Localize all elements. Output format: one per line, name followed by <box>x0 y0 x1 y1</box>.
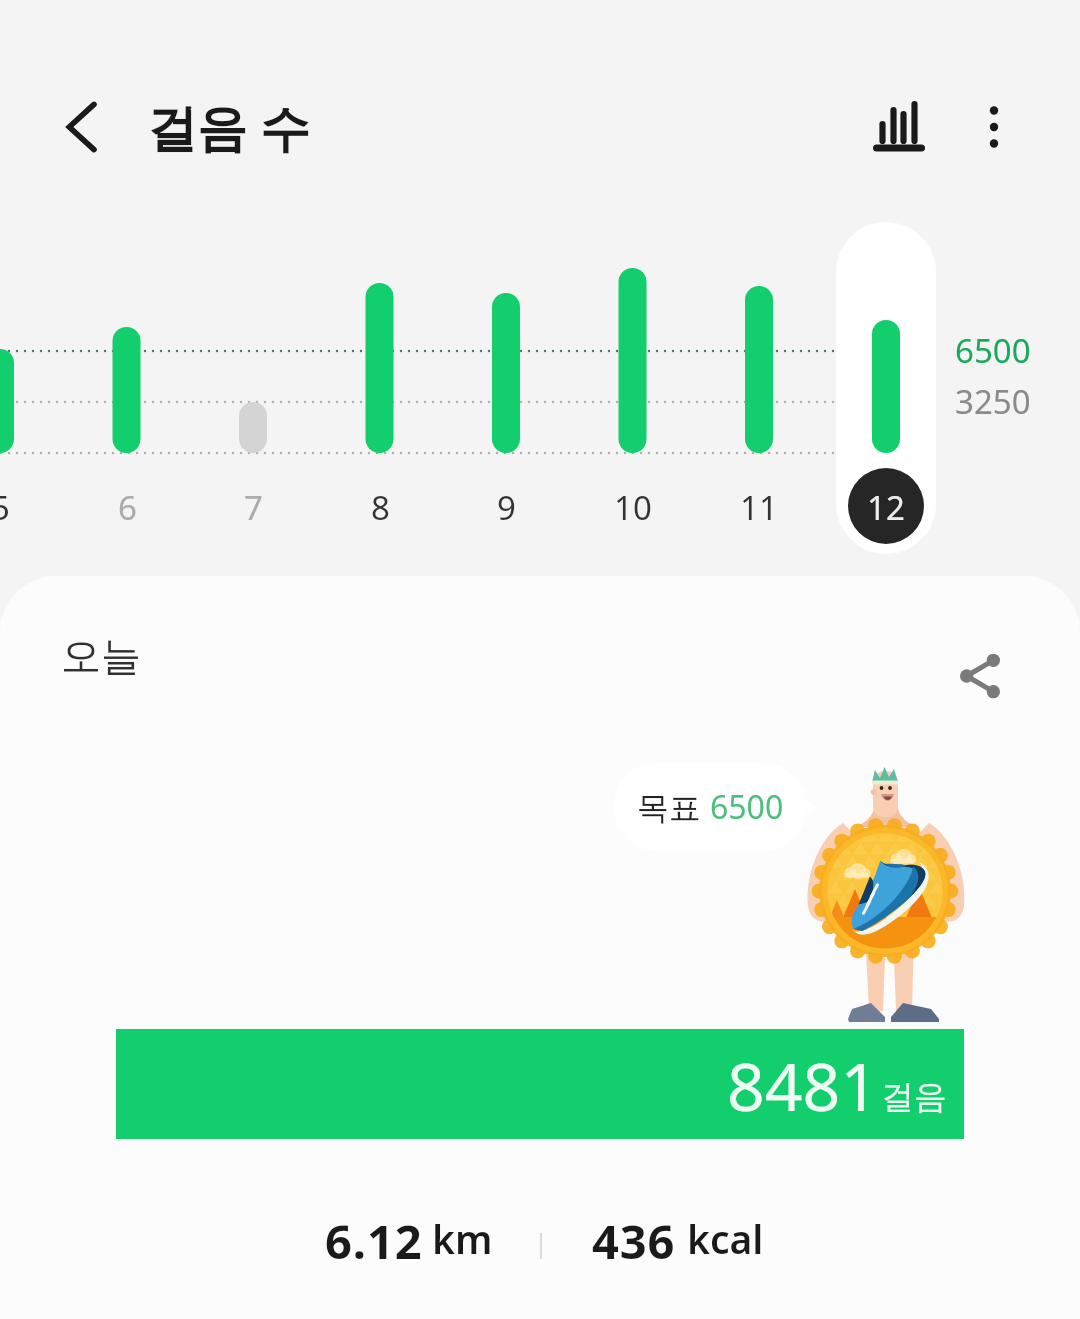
staticText: 6500 <box>955 328 1031 373</box>
staticText: 5 <box>0 485 10 525</box>
staticText: 436 <box>592 1209 676 1269</box>
staticText: 8481 <box>727 1040 879 1130</box>
staticText: 6 <box>118 485 137 525</box>
button[interactable]: View chart <box>856 84 941 169</box>
staticText: 걸음 <box>881 1076 947 1118</box>
staticText: 오늘 <box>61 631 141 681</box>
staticText: 걸음 수 <box>147 93 310 161</box>
staticText: 9 <box>497 485 516 525</box>
staticText: 6.12 <box>325 1209 423 1269</box>
staticText: km <box>432 1212 493 1265</box>
button[interactable]: Back <box>39 84 124 169</box>
button[interactable]: More options <box>951 84 1036 169</box>
staticText: 11 <box>740 485 778 525</box>
button[interactable]: Share <box>935 631 1025 721</box>
button[interactable]: 오늘 <box>46 604 226 692</box>
staticText: 12 <box>867 485 905 525</box>
button[interactable]: 7시 걸음 수 <box>203 222 303 554</box>
staticText: 3250 <box>955 379 1031 424</box>
button[interactable]: 12시 걸음 수 <box>836 222 936 554</box>
button[interactable]: 10시 걸음 수 <box>583 222 683 554</box>
button[interactable]: 8481 <box>116 1029 964 1139</box>
staticText: 8 <box>371 485 390 525</box>
staticText: 10 <box>614 485 652 525</box>
staticText: 6500 <box>710 785 784 829</box>
staticText: 목표 <box>637 785 710 829</box>
button[interactable]: 8시 걸음 수 <box>330 222 430 554</box>
staticText: 7 <box>244 485 263 525</box>
button[interactable]: 6시 걸음 수 <box>77 222 177 554</box>
staticText: kcal <box>687 1212 764 1265</box>
button[interactable]: 9시 걸음 수 <box>456 222 556 554</box>
button[interactable]: 11시 걸음 수 <box>709 222 809 554</box>
button[interactable]: 5시 걸음 수 <box>0 222 50 554</box>
button[interactable]: 6.12 <box>325 1206 764 1266</box>
